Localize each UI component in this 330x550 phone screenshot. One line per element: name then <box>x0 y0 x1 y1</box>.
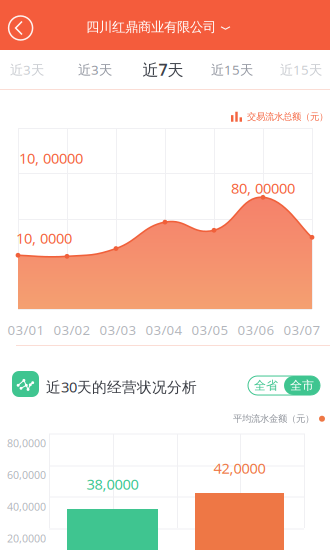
button[interactable]: Back <box>0 3 42 53</box>
staticText: 近15天 <box>280 61 322 78</box>
staticText: 03/01 <box>7 321 44 339</box>
button[interactable]: 全省 <box>248 376 284 395</box>
button[interactable]: 近3天 <box>0 50 60 89</box>
staticText: 42,0000 <box>213 458 265 478</box>
staticText: 20,0000 <box>7 531 46 545</box>
staticText: 80, 00000 <box>231 178 295 198</box>
staticText: 40,0000 <box>7 499 46 514</box>
staticText: 交易流水总额（元） <box>247 111 328 122</box>
staticText: 03/07 <box>283 321 320 339</box>
button[interactable]: 全市 <box>284 376 320 395</box>
staticText: 03/04 <box>145 321 182 339</box>
staticText: 03/03 <box>99 321 136 339</box>
staticText: 03/06 <box>237 321 274 339</box>
staticText: 全市 <box>290 378 314 393</box>
staticText: 60,0000 <box>7 468 46 482</box>
button[interactable]: 近15天 <box>199 50 265 89</box>
staticText: 38,0000 <box>86 474 138 494</box>
button[interactable]: 四川红鼎商业有限公司 <box>68 2 248 52</box>
staticText: 近3天 <box>10 61 44 78</box>
staticText: 近15天 <box>211 61 253 78</box>
button[interactable]: 近15天 <box>268 50 330 89</box>
button[interactable]: 近3天 <box>62 50 128 89</box>
staticText: 近7天 <box>142 59 183 80</box>
staticText: 03/05 <box>191 321 228 339</box>
staticText: 80,0000 <box>7 436 46 450</box>
button[interactable]: 近7天 <box>130 50 196 89</box>
staticText: 近3天 <box>78 61 112 78</box>
staticText: 平均流水金额（元） <box>233 413 314 424</box>
staticText: 10, 00000 <box>19 148 83 168</box>
staticText: 10, 0000 <box>16 228 72 248</box>
staticText: 近30天的经营状况分析 <box>46 377 197 396</box>
staticText: 四川红鼎商业有限公司 <box>86 19 216 35</box>
staticText: 全省 <box>254 378 278 393</box>
staticText: 03/02 <box>53 321 90 339</box>
